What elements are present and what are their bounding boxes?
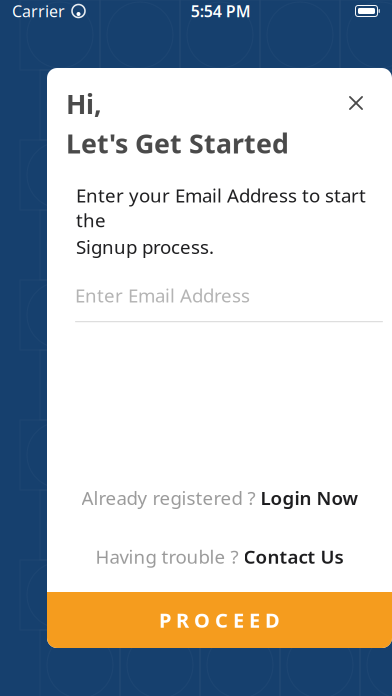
staticText: Signup process. <box>76 234 214 259</box>
button[interactable]: Having trouble ? <box>47 537 392 576</box>
staticText: Let's Get Started <box>66 125 289 161</box>
button[interactable]: Close <box>339 86 373 120</box>
staticText: Already registered ? <box>81 485 255 510</box>
button[interactable]: P R O C E E D <box>47 592 392 648</box>
staticText: Enter Email Address <box>75 283 250 308</box>
staticText: Hi, <box>66 86 102 121</box>
staticText: P R O C E E D <box>159 607 280 633</box>
staticText: Enter your Email Address to start the <box>76 183 366 232</box>
staticText: 5:54 PM <box>191 0 251 22</box>
staticText: Contact Us <box>243 544 343 569</box>
staticText: Carrier <box>12 0 65 22</box>
staticText: Having trouble ? <box>95 544 238 569</box>
staticText: Login Now <box>260 485 357 510</box>
button[interactable]: Already registered ? <box>47 478 392 517</box>
